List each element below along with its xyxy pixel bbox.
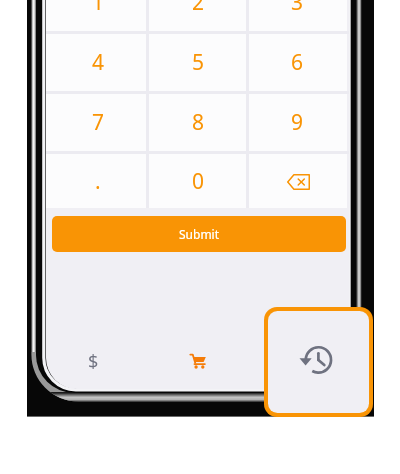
- button[interactable]: 2: [149, 0, 246, 31]
- staticText: Submit: [179, 226, 220, 242]
- button[interactable]: 8: [149, 94, 246, 151]
- button[interactable]: Cart: [170, 333, 226, 389]
- staticText: 4: [92, 48, 105, 77]
- button[interactable]: 5: [149, 34, 246, 91]
- staticText: $: [88, 349, 99, 374]
- button[interactable]: .: [46, 154, 146, 208]
- staticText: 5: [192, 48, 205, 77]
- button[interactable]: Payments: [65, 333, 121, 389]
- staticText: 9: [291, 108, 304, 137]
- staticText: 3: [291, 0, 304, 17]
- button[interactable]: 1: [46, 0, 146, 31]
- button[interactable]: Submit: [52, 216, 346, 252]
- staticText: 8: [192, 108, 205, 137]
- staticText: 7: [92, 108, 105, 137]
- button[interactable]: 0: [149, 154, 246, 208]
- button[interactable]: History: [268, 311, 369, 413]
- other: Backspace: [287, 174, 310, 190]
- button[interactable]: 4: [46, 34, 146, 91]
- staticText: 6: [291, 48, 304, 77]
- staticText: .: [95, 167, 101, 196]
- staticText: 1: [92, 0, 105, 17]
- staticText: 0: [192, 167, 205, 196]
- staticText: 2: [192, 0, 205, 17]
- button[interactable]: 3: [249, 0, 347, 31]
- button[interactable]: Backspace: [249, 154, 347, 208]
- button[interactable]: 9: [249, 94, 347, 151]
- button[interactable]: 6: [249, 34, 347, 91]
- button[interactable]: 7: [46, 94, 146, 151]
